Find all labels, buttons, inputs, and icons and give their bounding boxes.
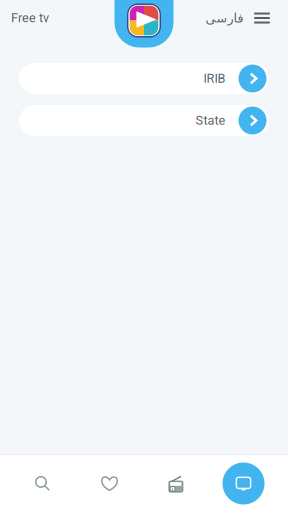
button[interactable]: Free tv: [0, 3, 57, 33]
button[interactable]: فارسی: [202, 3, 246, 33]
staticText: State: [195, 113, 225, 128]
staticText: Free tv: [11, 11, 49, 25]
button[interactable]: State: [19, 105, 269, 136]
staticText: IRIB: [203, 71, 225, 86]
button[interactable]: IRIB: [19, 63, 269, 94]
button[interactable]: Favourites: [76, 455, 143, 512]
button[interactable]: Menu: [250, 4, 274, 31]
button[interactable]: TV: [210, 455, 277, 512]
staticText: فارسی: [205, 11, 243, 25]
button[interactable]: Radio: [143, 455, 210, 512]
button[interactable]: Search: [9, 455, 76, 512]
